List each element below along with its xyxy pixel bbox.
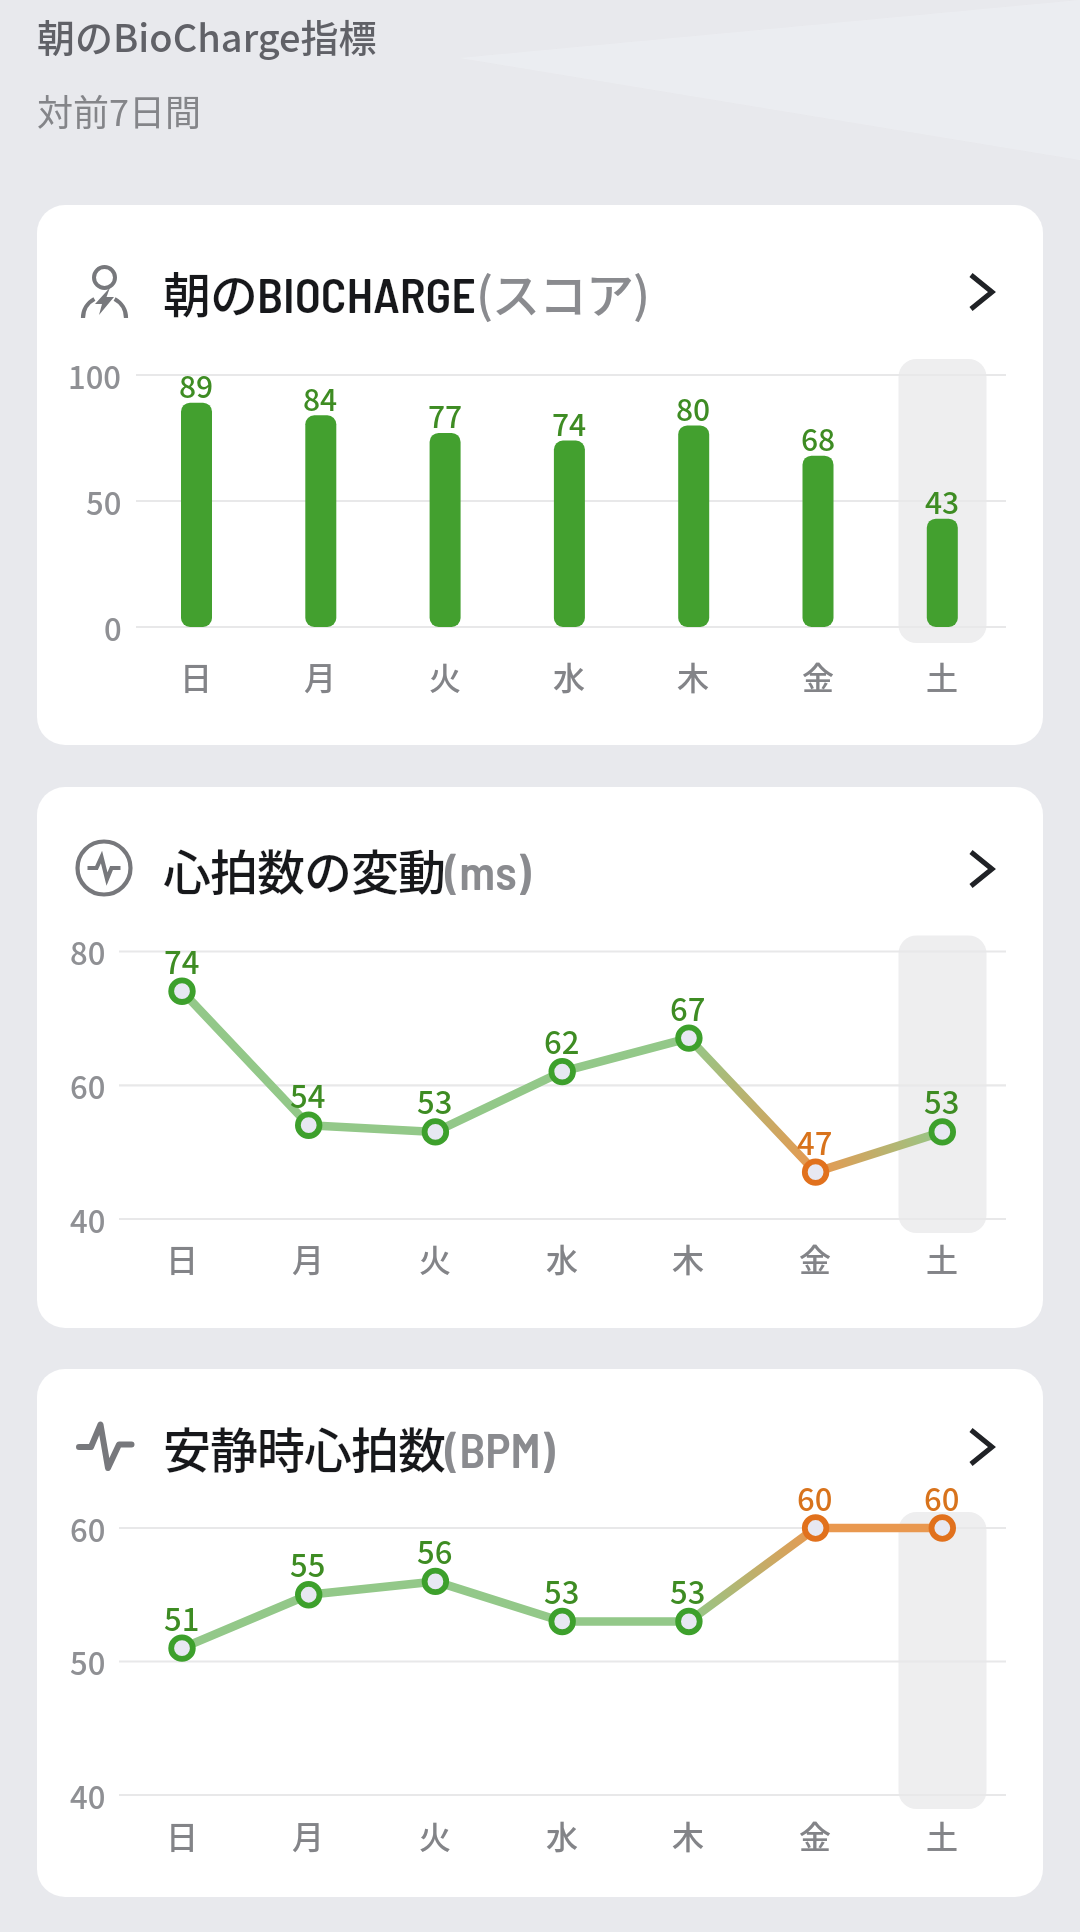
staticText: 60 [70, 1506, 106, 1551]
staticText: 50 [86, 479, 122, 524]
staticText: 金 [799, 1812, 832, 1858]
staticText: 月 [304, 653, 337, 699]
button[interactable] [37, 787, 1043, 1328]
staticText: 43 [925, 479, 960, 522]
staticText: 金 [799, 1235, 832, 1281]
button[interactable] [37, 1369, 1043, 1897]
staticText: 56 [417, 1528, 453, 1573]
staticText: 日 [166, 1812, 199, 1858]
staticText: 金 [802, 653, 835, 699]
staticText: 火 [419, 1812, 452, 1858]
button[interactable] [37, 205, 1043, 745]
staticText: 74 [164, 938, 200, 983]
staticText: 心拍数の変動(ms) [163, 834, 531, 904]
staticText: 47 [797, 1119, 833, 1164]
staticText: 55 [290, 1541, 326, 1586]
staticText: 対前7日間 [37, 84, 201, 136]
staticText: 67 [670, 985, 706, 1030]
staticText: 77 [428, 393, 463, 436]
staticText: 土 [926, 1812, 959, 1858]
staticText: 40 [70, 1773, 106, 1818]
staticText: 60 [924, 1475, 960, 1520]
staticText: 月 [292, 1235, 325, 1281]
staticText: 土 [926, 653, 959, 699]
staticText: 80 [70, 929, 106, 974]
staticText: 40 [70, 1197, 106, 1242]
staticText: 74 [552, 401, 587, 444]
staticText: 100 [68, 353, 122, 398]
staticText: 60 [797, 1475, 833, 1520]
staticText: 89 [179, 363, 214, 406]
staticText: 84 [303, 376, 338, 419]
staticText: 水 [546, 1235, 579, 1281]
staticText: 50 [70, 1639, 106, 1684]
staticText: 日 [166, 1235, 199, 1281]
staticText: 53 [670, 1568, 706, 1613]
staticText: 53 [417, 1078, 453, 1123]
staticText: 朝のBioCharge指標 [37, 8, 377, 63]
staticText: 木 [672, 1235, 705, 1281]
staticText: 火 [419, 1235, 452, 1281]
staticText: 80 [676, 386, 711, 429]
staticText: 水 [546, 1812, 579, 1858]
staticText: 木 [672, 1812, 705, 1858]
staticText: 水 [553, 653, 586, 699]
staticText: 月 [292, 1812, 325, 1858]
staticText: 60 [70, 1063, 106, 1108]
staticText: 0 [104, 605, 122, 650]
staticText: 53 [544, 1568, 580, 1613]
staticText: 53 [924, 1078, 960, 1123]
staticText: 62 [544, 1018, 580, 1063]
staticText: 安静時心拍数(BPM) [163, 1412, 555, 1482]
staticText: 朝のBIOCHARGE(スコア) [163, 257, 650, 327]
staticText: 51 [164, 1595, 200, 1640]
staticText: 火 [429, 653, 462, 699]
staticText: 日 [180, 653, 213, 699]
staticText: 木 [677, 653, 710, 699]
staticText: 54 [290, 1072, 326, 1117]
staticText: 土 [926, 1235, 959, 1281]
staticText: 68 [801, 416, 836, 459]
